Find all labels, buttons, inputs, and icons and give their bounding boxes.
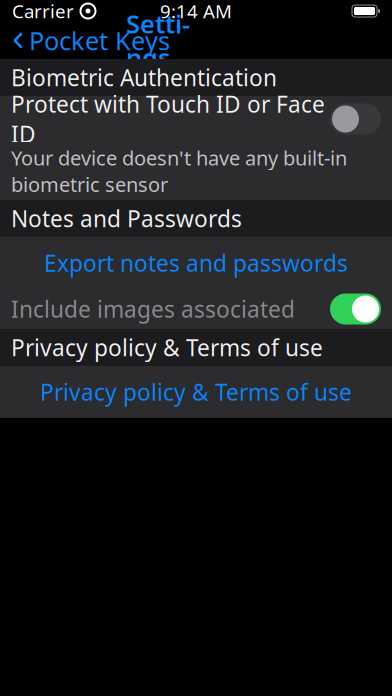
staticText: Settings: [126, 7, 190, 74]
staticText: Your device doesn't have any built-in bi…: [11, 144, 347, 197]
staticText: 9:14 AM: [160, 0, 232, 23]
button[interactable]: Export notes and passwords: [0, 237, 392, 289]
staticText: Notes and Passwords: [11, 203, 242, 233]
staticText: Include images associated: [11, 294, 295, 324]
staticText: Biometric Authentication: [11, 62, 277, 92]
staticText: Carrier: [12, 0, 74, 23]
staticText: Pocket Keys: [29, 24, 170, 57]
button[interactable]: Privacy policy & Terms of use: [0, 366, 392, 418]
staticText: Export notes and passwords: [44, 248, 348, 278]
staticText: Privacy policy & Terms of use: [40, 377, 352, 407]
staticText: Privacy policy & Terms of use: [11, 332, 323, 362]
button[interactable]: Pocket Keys: [0, 18, 170, 63]
staticText: Protect with Touch ID or Face ID: [11, 89, 325, 149]
button[interactable]: Protect with Touch ID or Face ID: [0, 96, 392, 142]
button[interactable]: Include images associated: [0, 289, 392, 329]
